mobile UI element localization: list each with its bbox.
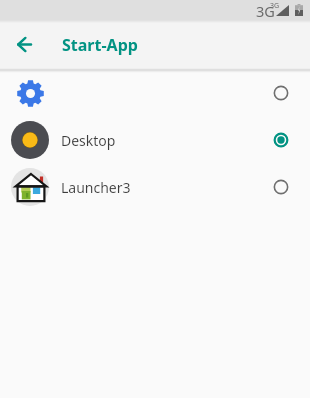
button[interactable]: Desktop xyxy=(0,116,310,163)
button[interactable]: Launcher3 xyxy=(0,163,310,210)
staticText: Start-App xyxy=(62,34,138,56)
button[interactable]: Select xyxy=(271,83,291,103)
staticText: 3G xyxy=(256,1,275,21)
staticText: 3G xyxy=(270,1,280,11)
staticText: Desktop xyxy=(61,131,116,150)
button[interactable]: Back xyxy=(9,29,39,59)
button[interactable]: Select xyxy=(271,177,291,197)
staticText: Launcher3 xyxy=(61,178,131,197)
button[interactable]: Select xyxy=(271,130,291,150)
button[interactable]: Select xyxy=(0,69,310,116)
